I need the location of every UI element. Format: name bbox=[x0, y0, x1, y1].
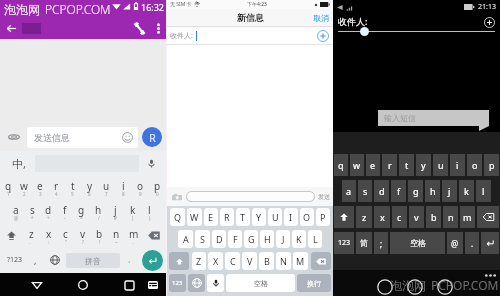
button[interactable]: y bbox=[81, 175, 98, 199]
button[interactable]: Z bbox=[192, 252, 206, 270]
button[interactable]: D bbox=[212, 230, 226, 248]
button[interactable]: f bbox=[391, 180, 406, 202]
button[interactable]: n bbox=[443, 206, 458, 228]
button[interactable]: j bbox=[442, 180, 457, 202]
button[interactable]: Back bbox=[0, 18, 22, 39]
button[interactable]: Add contact bbox=[316, 29, 330, 43]
button[interactable]: Attach bbox=[5, 128, 23, 146]
button[interactable]: o bbox=[467, 154, 482, 176]
button[interactable]: More options bbox=[150, 18, 166, 39]
button[interactable]: Shift bbox=[0, 223, 22, 247]
button[interactable]: a bbox=[8, 199, 24, 223]
button[interactable]: Call bbox=[128, 18, 150, 39]
button[interactable]: h bbox=[425, 180, 440, 202]
button[interactable]: u bbox=[98, 175, 115, 199]
button[interactable]: j bbox=[107, 199, 124, 223]
button[interactable]: X bbox=[208, 252, 223, 270]
button[interactable] bbox=[186, 191, 315, 202]
button[interactable]: z bbox=[22, 223, 40, 247]
button[interactable]: r bbox=[48, 175, 64, 199]
button[interactable]: Start bbox=[405, 277, 424, 296]
button[interactable]: w bbox=[350, 154, 364, 176]
button[interactable]: x bbox=[40, 223, 57, 247]
button[interactable]: n bbox=[108, 223, 125, 247]
button[interactable]: B bbox=[259, 252, 274, 270]
button[interactable]: w bbox=[16, 175, 32, 199]
button[interactable]: l bbox=[476, 180, 491, 202]
button[interactable]: l bbox=[141, 199, 158, 223]
button[interactable]: Home bbox=[72, 274, 94, 296]
button[interactable]: t bbox=[399, 154, 414, 176]
button[interactable]: h bbox=[90, 199, 107, 223]
button[interactable]: c bbox=[57, 223, 74, 247]
button[interactable]: P bbox=[316, 208, 330, 226]
button[interactable]: Switch keyboard bbox=[142, 274, 164, 296]
button[interactable]: a bbox=[342, 180, 356, 202]
button[interactable]: R bbox=[220, 208, 234, 226]
button[interactable]: b bbox=[426, 206, 441, 228]
button[interactable]: q bbox=[334, 154, 348, 176]
button[interactable]: g bbox=[408, 180, 423, 202]
button[interactable]: C bbox=[225, 252, 240, 270]
button[interactable]: x bbox=[374, 206, 390, 228]
button[interactable]: L bbox=[308, 230, 322, 248]
button[interactable]: f bbox=[56, 199, 73, 223]
button[interactable]: 发送信息 bbox=[27, 127, 138, 148]
button[interactable]: Camera bbox=[170, 190, 183, 203]
button[interactable]: m bbox=[460, 206, 475, 228]
button[interactable]: g bbox=[73, 199, 90, 223]
button[interactable]: I bbox=[284, 208, 298, 226]
button[interactable]: p bbox=[484, 154, 499, 176]
button[interactable]: d bbox=[40, 199, 56, 223]
button[interactable]: ?123 bbox=[2, 247, 27, 273]
button[interactable]: 换行 bbox=[297, 274, 331, 292]
button[interactable]: Back bbox=[375, 277, 394, 296]
button[interactable]: G bbox=[244, 230, 258, 248]
button[interactable]: r bbox=[382, 154, 397, 176]
button[interactable]: . bbox=[465, 232, 479, 254]
button[interactable]: b bbox=[91, 223, 108, 247]
button[interactable]: N bbox=[276, 252, 291, 270]
button[interactable]: ; bbox=[374, 232, 388, 254]
button[interactable]: Dictation bbox=[207, 274, 224, 292]
button[interactable]: R bbox=[142, 127, 162, 147]
button[interactable]: , bbox=[27, 247, 44, 273]
button[interactable]: K bbox=[292, 230, 306, 248]
button[interactable]: z bbox=[356, 206, 372, 228]
button[interactable]: o bbox=[132, 175, 149, 199]
button[interactable]: k bbox=[124, 199, 141, 223]
button[interactable]: Add contact bbox=[482, 15, 496, 29]
button[interactable]: W bbox=[187, 208, 202, 226]
button[interactable]: Search bbox=[435, 277, 454, 296]
button[interactable]: s bbox=[24, 199, 40, 223]
button[interactable]: Language bbox=[188, 274, 205, 292]
button[interactable]: F bbox=[228, 230, 242, 248]
button[interactable]: Recents bbox=[118, 274, 140, 296]
button[interactable]: d bbox=[374, 180, 389, 202]
button[interactable]: m bbox=[125, 223, 142, 247]
button[interactable]: Backspace bbox=[477, 206, 499, 228]
button[interactable]: e bbox=[32, 175, 48, 199]
button[interactable]: 空格 bbox=[390, 232, 445, 254]
button[interactable]: t bbox=[64, 175, 81, 199]
button[interactable]: i bbox=[115, 175, 132, 199]
button[interactable]: 123 bbox=[169, 274, 186, 292]
button[interactable]: v bbox=[74, 223, 91, 247]
button[interactable]: 123 bbox=[334, 232, 354, 254]
button[interactable]: Y bbox=[252, 208, 266, 226]
button[interactable]: 输入短信 bbox=[378, 110, 489, 126]
button[interactable]: Back bbox=[26, 274, 48, 296]
button[interactable]: Shift bbox=[169, 252, 189, 270]
button[interactable]: U bbox=[268, 208, 282, 226]
button[interactable]: k bbox=[459, 180, 474, 202]
button[interactable]: Shift bbox=[334, 206, 354, 228]
button[interactable]: E bbox=[204, 208, 218, 226]
button[interactable]: e bbox=[366, 154, 380, 176]
button[interactable]: q bbox=[0, 175, 16, 199]
button[interactable]: @ bbox=[447, 232, 463, 254]
button[interactable]: H bbox=[260, 230, 274, 248]
button[interactable]: i bbox=[450, 154, 465, 176]
button[interactable]: u bbox=[433, 154, 448, 176]
button[interactable]: Backspace bbox=[311, 252, 331, 270]
